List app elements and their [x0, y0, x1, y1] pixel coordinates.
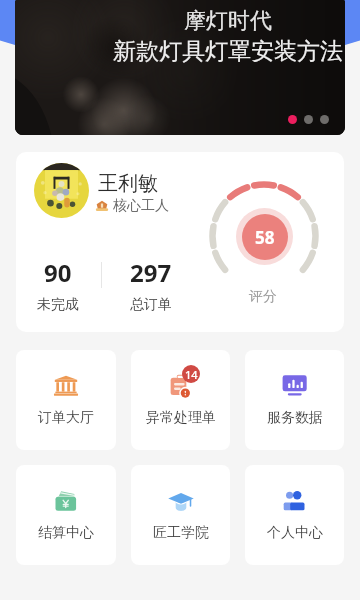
- staticText: 未完成: [37, 296, 79, 314]
- staticText: 王利敏: [98, 171, 158, 196]
- button[interactable]: 结算中心: [16, 465, 116, 565]
- button[interactable]: 摩灯时代: [15, 0, 345, 135]
- staticText: 异常处理单: [146, 409, 216, 427]
- button[interactable]: Avatar: [34, 163, 89, 218]
- staticText: 评分: [249, 288, 277, 306]
- button[interactable]: 服务数据: [245, 350, 344, 450]
- staticText: 新款灯具灯罩安装方法: [113, 37, 343, 66]
- staticText: 14: [185, 367, 198, 382]
- button[interactable]: 14: [131, 350, 230, 450]
- staticText: 结算中心: [38, 524, 94, 542]
- staticText: 摩灯时代: [184, 7, 272, 35]
- button[interactable]: 订单大厅: [16, 350, 116, 450]
- staticText: 58: [255, 226, 275, 249]
- button[interactable]: 90: [28, 256, 88, 314]
- staticText: 订单大厅: [38, 409, 94, 427]
- button[interactable]: 个人中心: [245, 465, 344, 565]
- staticText: 297: [130, 256, 172, 289]
- staticText: 核心工人: [113, 197, 169, 215]
- button[interactable]: 匠工学院: [131, 465, 230, 565]
- staticText: 服务数据: [267, 409, 323, 427]
- staticText: 90: [44, 256, 72, 289]
- staticText: 匠工学院: [153, 524, 209, 542]
- staticText: 个人中心: [267, 524, 323, 542]
- button[interactable]: 297: [121, 256, 181, 314]
- staticText: 总订单: [130, 296, 172, 314]
